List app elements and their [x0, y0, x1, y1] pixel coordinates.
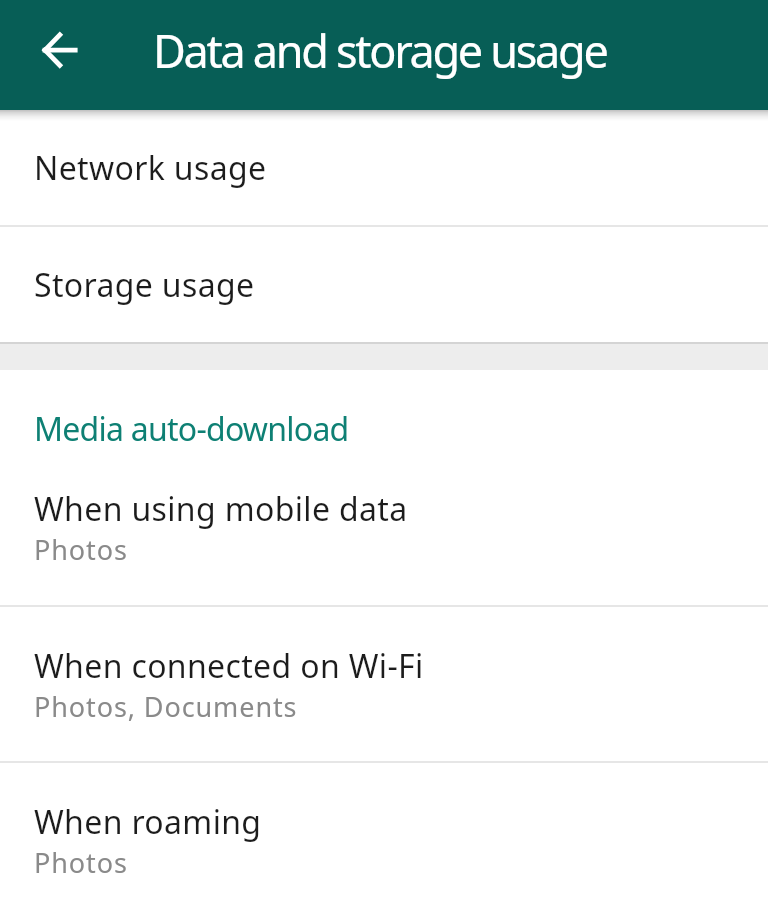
staticText: When connected on Wi-Fi [34, 644, 424, 688]
button[interactable]: Navigate back [0, 0, 100, 110]
button[interactable]: When connected on Wi-Fi [0, 607, 768, 761]
button[interactable]: When using mobile data [0, 450, 768, 605]
staticText: Data and storage usage [153, 20, 607, 81]
button[interactable]: Storage usage [0, 227, 768, 342]
staticText: Storage usage [34, 263, 255, 307]
staticText: Network usage [34, 146, 267, 190]
button[interactable]: Network usage [0, 110, 768, 225]
staticText: When roaming [34, 800, 262, 844]
staticText: Photos [34, 844, 128, 881]
staticText: Photos, Documents [34, 688, 298, 725]
staticText: Photos [34, 531, 128, 568]
button[interactable]: When roaming [0, 763, 768, 900]
staticText: When using mobile data [34, 487, 408, 531]
staticText: Media auto-download [34, 407, 349, 451]
